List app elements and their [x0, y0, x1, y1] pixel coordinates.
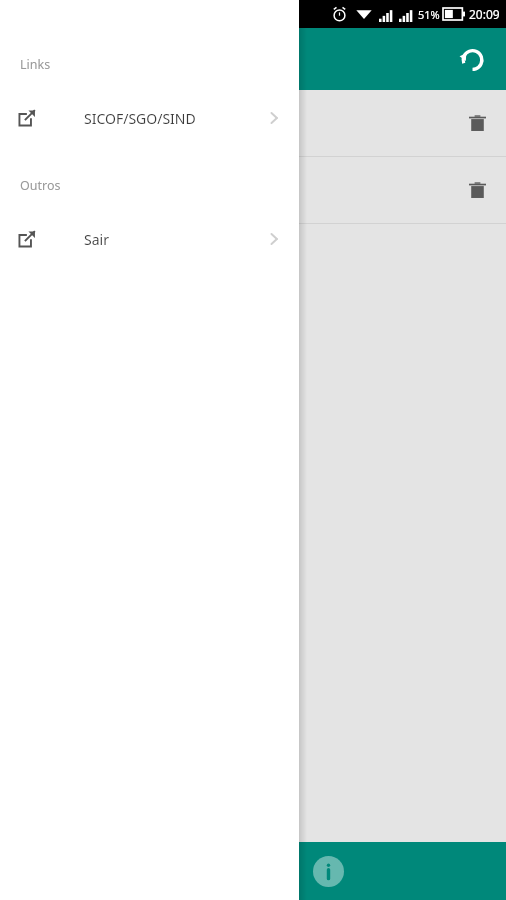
button[interactable]: Informações: [306, 849, 350, 893]
staticText: 51%: [418, 7, 440, 22]
staticText: Sair: [84, 230, 109, 249]
button[interactable]: Sair: [0, 220, 299, 258]
button[interactable]: SICOF/SGO/SIND: [0, 99, 299, 137]
staticText: SICOF/SGO/SIND: [84, 109, 196, 128]
button[interactable]: Excluir: [0, 157, 506, 223]
button[interactable]: Excluir: [0, 90, 506, 156]
staticText: Links: [20, 56, 51, 73]
staticText: Outros: [20, 177, 61, 194]
staticText: 20:09: [469, 6, 500, 22]
button[interactable]: Excluir: [456, 102, 498, 144]
button[interactable]: Excluir: [456, 169, 498, 211]
button[interactable]: Atualizar: [448, 35, 496, 83]
